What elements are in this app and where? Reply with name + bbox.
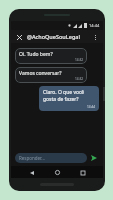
button[interactable]: Vamos conversar? (15, 67, 87, 83)
button[interactable]: More options (90, 32, 100, 42)
staticText: Responder... (19, 155, 45, 161)
staticText: @AchoQueSouLegal (27, 33, 90, 40)
button[interactable]: Recent apps (77, 167, 88, 178)
staticText: 14:44 (89, 23, 100, 28)
staticText: Claro. O que você gosta de fazer? (43, 89, 96, 103)
button[interactable]: Back (26, 167, 37, 178)
staticText: 14:44 (87, 105, 96, 109)
button[interactable]: Close (14, 32, 24, 42)
staticText: 14:32 (75, 77, 84, 81)
button[interactable]: Oi. Tudo bem? (15, 48, 87, 64)
button[interactable]: Send (89, 153, 99, 163)
staticText: Oi. Tudo bem? (19, 51, 53, 58)
button[interactable]: Home (52, 167, 63, 178)
button[interactable]: Claro. O que você gosta de fazer? (39, 86, 99, 111)
staticText: 14:32 (75, 58, 84, 62)
staticText: Vamos conversar? (19, 70, 62, 77)
button[interactable]: Responder... (15, 153, 87, 163)
